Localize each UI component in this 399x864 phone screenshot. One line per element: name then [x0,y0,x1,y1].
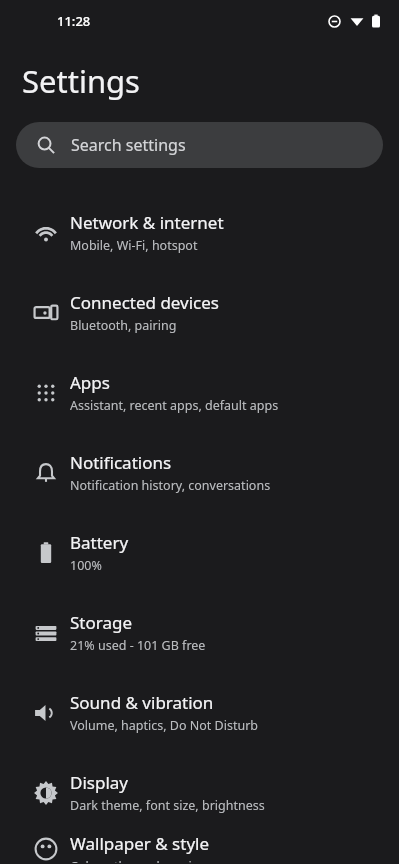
button[interactable]: Sound & vibration [0,673,399,753]
staticText: Notification history, conversations [70,477,271,494]
staticText: Settings [22,60,140,102]
staticText: Storage [70,611,133,634]
button[interactable]: Apps [0,353,399,433]
staticText: Dark theme, font size, brightness [70,797,265,814]
staticText: Bluetooth, pairing [70,317,177,334]
staticText: Network & internet [70,211,224,234]
button[interactable]: Wallpaper & style [0,833,399,864]
staticText: Notifications [70,451,172,474]
button[interactable]: Search settings [16,122,383,168]
staticText: 100% [70,557,102,574]
staticText: Display [70,771,128,794]
staticText: Mobile, Wi-Fi, hotspot [70,237,198,254]
button[interactable]: Notifications [0,433,399,513]
staticText: Wallpaper & style [70,832,210,855]
staticText: Volume, haptics, Do Not Disturb [70,717,259,734]
button[interactable]: Storage [0,593,399,673]
button[interactable]: Display [0,753,399,833]
staticText: Sound & vibration [70,691,214,714]
staticText: Assistant, recent apps, default apps [70,397,279,414]
staticText: 21% used - 101 GB free [70,637,206,654]
staticText: Apps [70,371,110,394]
staticText: Search settings [71,134,186,156]
staticText: 11:28 [57,12,91,30]
button[interactable]: Network & internet [0,193,399,273]
staticText: Battery [70,531,129,554]
staticText: Colors, themed app icons [70,858,220,863]
button[interactable]: Battery [0,513,399,593]
staticText: Connected devices [70,291,220,314]
button[interactable]: Connected devices [0,273,399,353]
